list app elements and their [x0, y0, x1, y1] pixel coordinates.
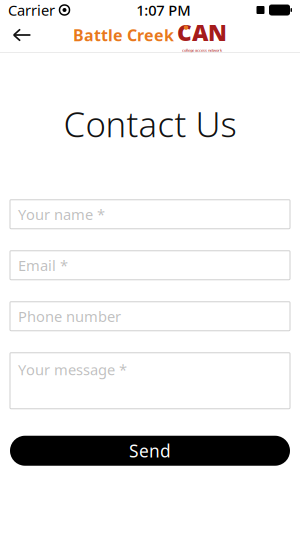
staticText: Battle Creek [73, 24, 174, 46]
staticText: Your message * [18, 360, 127, 379]
staticText: Contact Us [63, 101, 236, 147]
staticText: Phone number [18, 306, 121, 326]
button[interactable]: Email * [10, 251, 290, 280]
staticText [55, 0, 59, 20]
button[interactable]: Phone number [10, 302, 290, 331]
staticText: Carrier [8, 0, 55, 20]
staticText: Your name * [18, 204, 105, 224]
staticText: 1:07 PM [136, 0, 190, 20]
button[interactable]: Your message * [10, 353, 290, 409]
staticText: college access network [182, 48, 222, 53]
staticText: Send [129, 439, 171, 462]
staticText: AN [192, 17, 227, 47]
staticText: Email * [18, 255, 68, 275]
staticText: C [177, 17, 192, 47]
button[interactable]: Send [10, 436, 290, 466]
button[interactable]: Back [0, 22, 44, 48]
button[interactable]: Your name * [10, 200, 290, 229]
